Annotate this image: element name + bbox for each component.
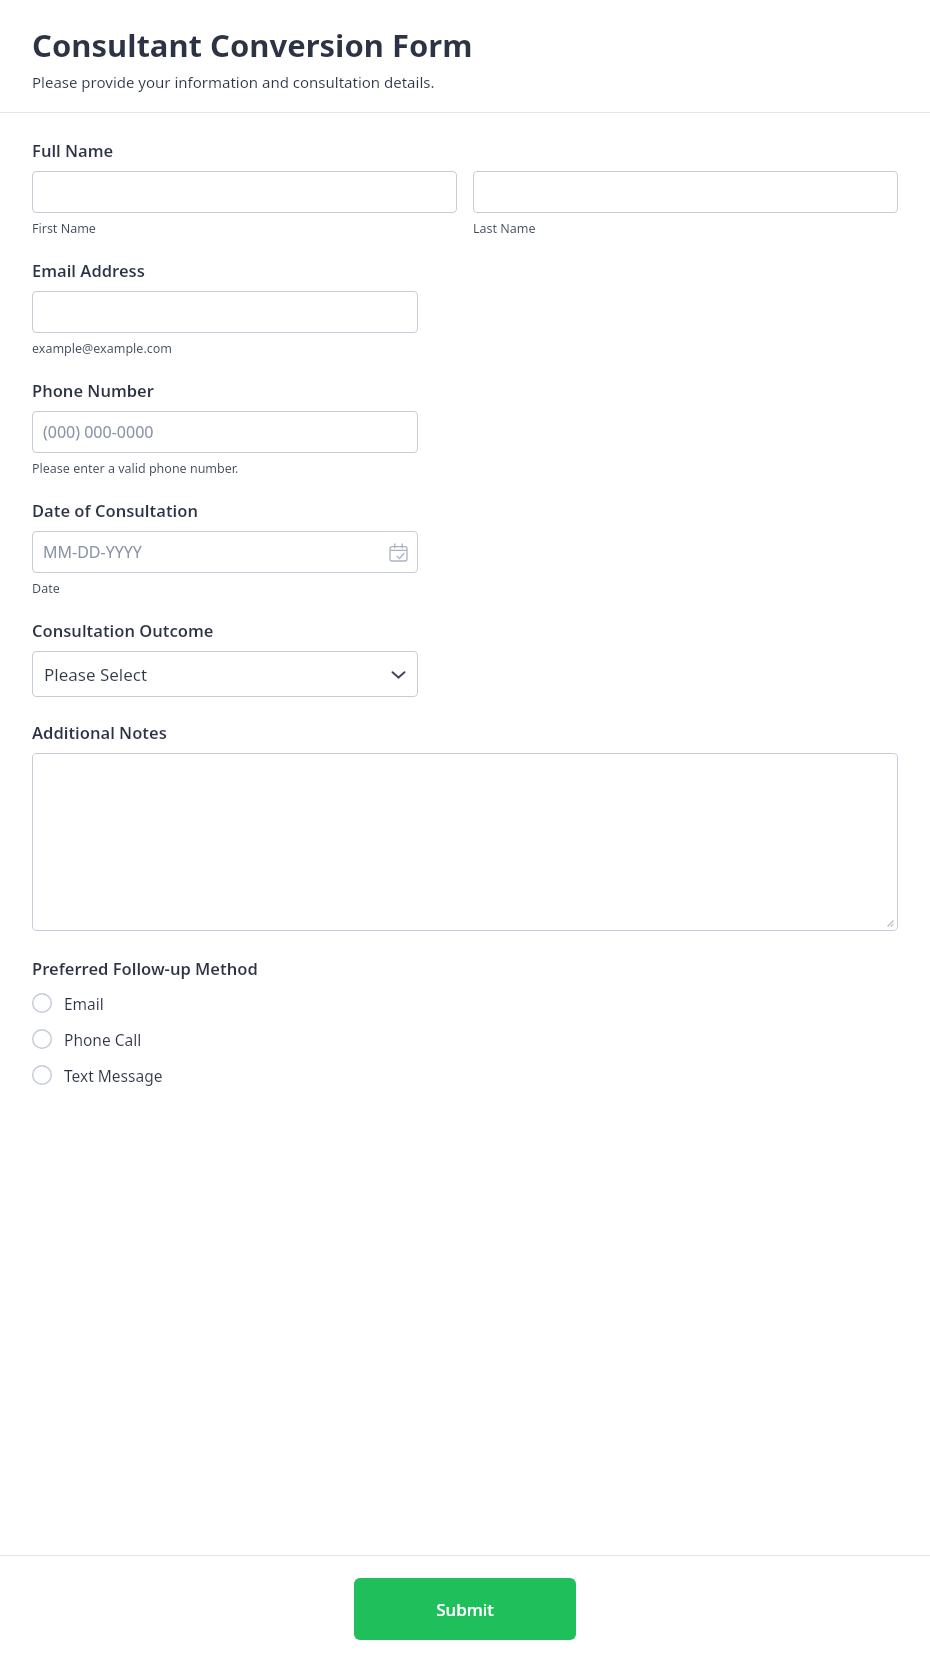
button[interactable]: Phone Call [32, 1021, 898, 1057]
button[interactable] [32, 753, 898, 931]
staticText: Date [32, 580, 60, 597]
staticText: Email Address [32, 259, 145, 281]
other: Pick date [390, 544, 407, 561]
staticText: Please provide your information and cons… [32, 72, 435, 92]
button[interactable]: Email [32, 985, 898, 1021]
staticText: Preferred Follow-up Method [32, 957, 258, 979]
staticText: First Name [32, 220, 96, 237]
staticText: example@example.com [32, 340, 172, 357]
staticText: Email [64, 993, 104, 1014]
staticText: Consultant Conversion Form [32, 24, 473, 66]
button[interactable] [473, 171, 898, 213]
button[interactable]: (000) 000-0000 [32, 411, 418, 453]
button[interactable] [32, 171, 457, 213]
staticText: Submit [436, 1598, 494, 1621]
staticText: MM-DD-YYYY [43, 541, 142, 563]
staticText: Consultation Outcome [32, 619, 214, 641]
staticText: Text Message [64, 1065, 163, 1086]
button[interactable]: MM-DD-YYYY [32, 531, 418, 573]
staticText: (000) 000-0000 [43, 421, 154, 443]
staticText: Last Name [473, 220, 536, 237]
staticText: Date of Consultation [32, 499, 198, 521]
staticText: Phone Call [64, 1029, 142, 1050]
button[interactable]: Submit [354, 1578, 576, 1640]
button[interactable]: Text Message [32, 1057, 898, 1093]
staticText: Please enter a valid phone number. [32, 460, 239, 477]
staticText: Phone Number [32, 379, 154, 401]
staticText: Please Select [44, 663, 148, 686]
staticText: Full Name [32, 139, 114, 161]
staticText: Additional Notes [32, 721, 167, 743]
button[interactable] [32, 291, 418, 333]
other: Open dropdown [391, 667, 406, 682]
button[interactable]: Please Select [32, 651, 418, 697]
